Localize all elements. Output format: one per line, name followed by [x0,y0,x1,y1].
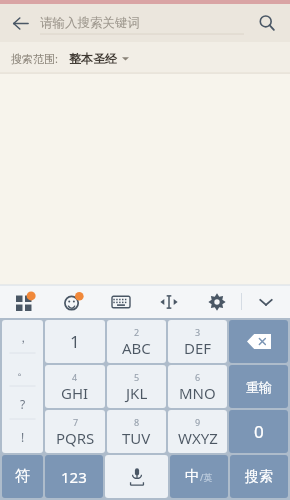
staticText: 123 [61,467,87,487]
staticText: ， [17,330,29,345]
staticText: TUV [122,428,151,448]
button[interactable]: 2 [107,320,166,363]
staticText: DEF [184,338,212,358]
staticText: 5 [134,371,140,383]
button[interactable]: Move cursor [145,285,193,318]
staticText: 4 [72,371,78,383]
button[interactable]: Keyboard layout [97,285,145,318]
staticText: 9 [195,416,201,428]
button[interactable]: 整本圣经 [67,47,131,70]
button[interactable]: 搜索 [230,455,288,498]
staticText: ABC [122,338,151,358]
button[interactable]: 请输入搜索关键词 [40,11,244,35]
button[interactable]: 3 [168,320,227,363]
button[interactable]: ， [2,320,43,453]
button[interactable]: Apps [0,285,49,318]
staticText: GHI [61,383,89,403]
staticText: 重输 [246,379,272,395]
staticText: 7 [73,416,79,428]
button[interactable]: 7 [45,410,105,453]
staticText: MNO [179,383,216,403]
staticText: WXYZ [178,428,218,448]
staticText: 1 [70,330,80,353]
staticText: 中 [185,467,200,486]
staticText: 6 [195,371,201,383]
staticText: /英 [200,471,213,483]
button[interactable]: 8 [107,410,166,453]
staticText: 搜索范围: [11,51,58,66]
staticText: ! [21,429,25,445]
staticText: JKL [126,383,148,403]
button[interactable]: 重输 [229,365,288,408]
button[interactable]: 1 [45,320,105,363]
button[interactable]: Back [5,8,35,38]
button[interactable]: 6 [168,365,227,408]
button[interactable]: Search [252,8,282,38]
staticText: 符 [15,467,30,486]
button[interactable]: Emoji [49,285,97,318]
button[interactable]: 123 [45,455,103,498]
staticText: ? [20,396,26,412]
button[interactable]: Space and voice input [105,455,168,498]
staticText: 0 [254,420,264,443]
button[interactable]: Hide keyboard [242,285,290,318]
button[interactable]: Delete [229,320,288,363]
button[interactable]: 0 [229,410,288,453]
button[interactable]: 5 [107,365,166,408]
staticText: 2 [134,326,140,338]
staticText: 8 [134,416,140,428]
staticText: 3 [195,326,201,338]
staticText: 。 [17,363,29,378]
staticText: 请输入搜索关键词 [40,15,140,31]
staticText: PQRS [56,428,95,448]
button[interactable]: 4 [45,365,105,408]
button[interactable]: 符 [2,455,43,498]
button[interactable]: 中 [170,455,228,498]
staticText: 搜索 [245,468,273,486]
button[interactable]: Settings [193,285,241,318]
staticText: 整本圣经 [69,51,117,66]
button[interactable]: 9 [168,410,227,453]
